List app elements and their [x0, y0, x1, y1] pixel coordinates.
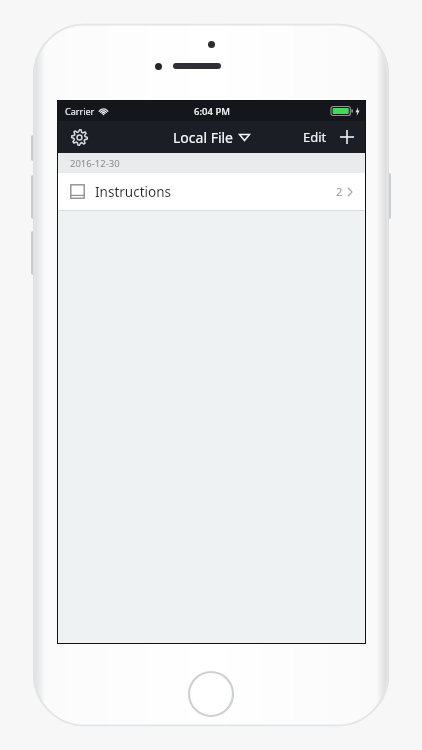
- staticText: Local File: [173, 128, 234, 147]
- staticText: 2016-12-30: [70, 157, 120, 170]
- staticText: Carrier: [65, 105, 95, 117]
- staticText: 2: [336, 184, 343, 199]
- button[interactable]: Local File: [167, 125, 256, 150]
- button[interactable]: Edit: [298, 122, 332, 152]
- staticText: Edit: [303, 128, 327, 146]
- button[interactable]: Add: [332, 122, 362, 152]
- staticText: 6:04 PM: [194, 105, 230, 118]
- staticText: Instructions: [95, 183, 171, 201]
- button[interactable]: Settings: [64, 122, 94, 152]
- button[interactable]: Instructions: [58, 173, 365, 210]
